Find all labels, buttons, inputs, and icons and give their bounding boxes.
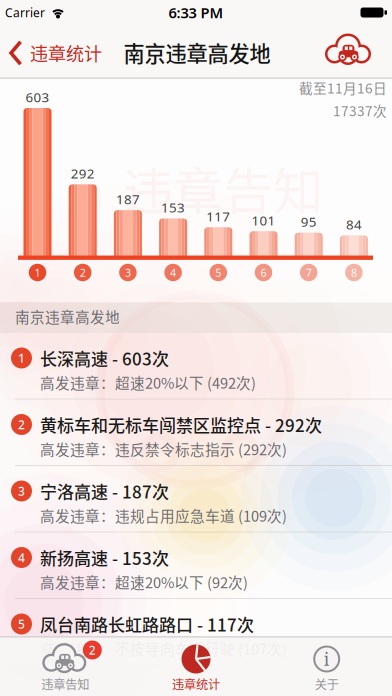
staticText: 2 xyxy=(80,265,86,280)
staticText: i xyxy=(324,647,330,671)
staticText: 1 xyxy=(18,350,25,366)
staticText: 1 xyxy=(34,265,40,280)
button[interactable]: 3 xyxy=(0,466,392,532)
staticText: 4 xyxy=(170,265,176,280)
button[interactable]: 1 xyxy=(0,333,392,399)
staticText: 违章统计 xyxy=(30,40,102,66)
staticText: 长深高速 - 603次 xyxy=(40,346,169,370)
staticText: 违章统计 xyxy=(172,675,220,693)
staticText: 5 xyxy=(215,265,221,280)
staticText: 新扬高速 - 153次 xyxy=(40,545,169,570)
staticText: 8 xyxy=(351,265,357,280)
button[interactable]: 违章统计 xyxy=(131,637,261,696)
staticText: 292 xyxy=(71,164,95,182)
staticText: 6 xyxy=(260,265,266,280)
staticText: 7 xyxy=(306,265,312,280)
staticText: 5 xyxy=(18,616,25,632)
staticText: Carrier xyxy=(5,4,45,20)
staticText: 187 xyxy=(116,190,140,208)
staticText: 17337次 xyxy=(333,100,387,120)
staticText: 101 xyxy=(251,211,275,229)
staticText: 603 xyxy=(25,88,49,106)
staticText: 84 xyxy=(346,215,362,233)
staticText: 黄标车和无标车闯禁区监控点 - 292次 xyxy=(40,412,322,437)
staticText: 高发违章：违反禁令标志指示 (292次) xyxy=(40,438,287,459)
staticText: 117 xyxy=(206,207,230,225)
staticText: 违章告知 xyxy=(123,152,323,224)
button[interactable]: i xyxy=(262,637,392,696)
staticText: 违章告知 xyxy=(41,675,89,693)
staticText: 高发违章：超速20%以下 (492次) xyxy=(40,372,256,393)
staticText: 高发违章：超速20%以下 (92次) xyxy=(40,571,248,592)
staticText: 高发违章：不按导向车道行驶 (107次) xyxy=(40,638,287,659)
staticText: 凤台南路长虹路路口 - 117次 xyxy=(40,612,254,636)
staticText: 2 xyxy=(18,416,25,432)
button[interactable]: 5 xyxy=(0,599,392,665)
staticText: 4 xyxy=(18,549,25,565)
button[interactable]: 2 xyxy=(0,637,130,696)
staticText: 宁洛高速 - 187次 xyxy=(40,479,169,503)
staticText: 153 xyxy=(161,199,185,216)
staticText: 关于 xyxy=(315,675,339,693)
button[interactable]: 违章查询 xyxy=(325,35,371,64)
staticText: 3 xyxy=(125,265,131,280)
staticText: 2 xyxy=(89,642,96,658)
button[interactable]: 违章统计 xyxy=(9,40,102,66)
staticText: 95 xyxy=(301,213,317,230)
staticText: 6:33 PM xyxy=(168,3,223,22)
staticText: 截至11月16日 xyxy=(299,78,387,97)
button[interactable]: 4 xyxy=(0,532,392,599)
button[interactable]: 2 xyxy=(0,399,392,466)
staticText: 南京违章高发地 xyxy=(15,306,120,327)
staticText: 3 xyxy=(18,483,25,499)
staticText: 南京违章高发地 xyxy=(123,37,270,68)
staticText: 高发违章：违规占用应急车道 (109次) xyxy=(40,505,287,526)
